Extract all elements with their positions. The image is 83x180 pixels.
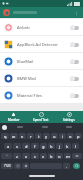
button[interactable]: Toggle (70, 59, 79, 64)
staticText: Settings (63, 118, 75, 122)
staticText: h (50, 144, 53, 149)
staticText: u (53, 134, 56, 139)
button[interactable]: Material Files (0, 87, 83, 103)
button[interactable]: p (75, 133, 82, 139)
staticText: x (25, 154, 28, 159)
button[interactable]: x (22, 153, 30, 159)
button[interactable]: Toggle (70, 76, 79, 81)
button[interactable]: Settings (22, 163, 29, 169)
staticText: g (42, 144, 45, 149)
button[interactable]: s (13, 143, 21, 149)
staticText: i (62, 134, 64, 139)
button[interactable]: h (48, 143, 55, 149)
staticText: q (4, 134, 7, 139)
staticText: e (21, 134, 24, 139)
button[interactable]: Backspace (72, 153, 82, 159)
staticText: BlueMail (17, 59, 68, 64)
staticText: d (25, 144, 28, 149)
button[interactable]: u (51, 133, 58, 139)
button[interactable]: BlueMail (0, 53, 83, 69)
button[interactable]: AppBlock Ad Detector (0, 36, 83, 52)
staticText: AppBlock Ad Detector (17, 42, 68, 47)
button[interactable]: e (19, 133, 26, 139)
staticText: z (16, 154, 18, 159)
staticText: b (50, 154, 53, 159)
button[interactable]: More options (72, 9, 80, 17)
staticText: c (34, 154, 36, 159)
staticText: n (58, 154, 61, 159)
button[interactable]: v (40, 153, 47, 159)
staticText: t (38, 134, 40, 139)
button[interactable]: Monitor (0, 111, 27, 123)
staticText: s (16, 144, 18, 149)
button[interactable]: Toggle (70, 25, 79, 30)
button[interactable]: y (43, 133, 50, 139)
button[interactable]: b (48, 153, 55, 159)
button[interactable]: r (27, 133, 34, 139)
button[interactable]: ?123 (1, 163, 13, 169)
staticText: f (34, 144, 36, 149)
button[interactable]: j (56, 143, 63, 149)
button[interactable]: Toggle (70, 42, 79, 47)
staticText: BMW Mail (17, 76, 68, 81)
button[interactable]: Settings (55, 111, 83, 123)
staticText: Airbnb (17, 25, 68, 30)
button[interactable]: Search (73, 163, 80, 169)
button[interactable]: Voice input (2, 125, 7, 130)
staticText: p (77, 134, 80, 139)
button[interactable]: Emoji (14, 163, 21, 169)
staticText: Speed Test (33, 118, 49, 122)
button[interactable]: n (56, 153, 63, 159)
button[interactable]: q (1, 133, 9, 139)
button[interactable]: App logo (3, 9, 10, 16)
staticText: Material Files (17, 93, 68, 98)
staticText: w (12, 134, 16, 139)
button[interactable]: o (67, 133, 74, 139)
staticText: Monitor (8, 118, 20, 122)
button[interactable]: Airbnb (0, 19, 83, 35)
staticText: r (30, 134, 32, 139)
button[interactable]: f (31, 143, 39, 149)
button[interactable]: Shift (1, 153, 12, 159)
button[interactable]: BMW Mail (0, 70, 83, 86)
button[interactable]: Toggle (70, 93, 79, 98)
staticText: y (45, 134, 48, 139)
staticText: v (42, 154, 45, 159)
button[interactable]: c (31, 153, 39, 159)
button[interactable]: w (10, 133, 18, 139)
button[interactable]: Speed Test (27, 111, 55, 123)
staticText: l (75, 144, 77, 149)
staticText: m (66, 154, 70, 159)
button[interactable]: l (72, 143, 79, 149)
button[interactable]: m (64, 153, 71, 159)
staticText: j (59, 144, 61, 149)
staticText: a (7, 144, 10, 149)
button[interactable]: a (4, 143, 12, 149)
button[interactable]: i (59, 133, 66, 139)
staticText: . (66, 164, 68, 169)
button[interactable]: d (22, 143, 30, 149)
button[interactable]: t (35, 133, 42, 139)
button[interactable]: z (13, 153, 21, 159)
staticText: o (69, 134, 72, 139)
button[interactable]: k (64, 143, 71, 149)
button[interactable]: . (63, 163, 70, 169)
staticText: ?123 (4, 164, 11, 168)
button[interactable]: g (40, 143, 47, 149)
staticText: k (66, 144, 69, 149)
